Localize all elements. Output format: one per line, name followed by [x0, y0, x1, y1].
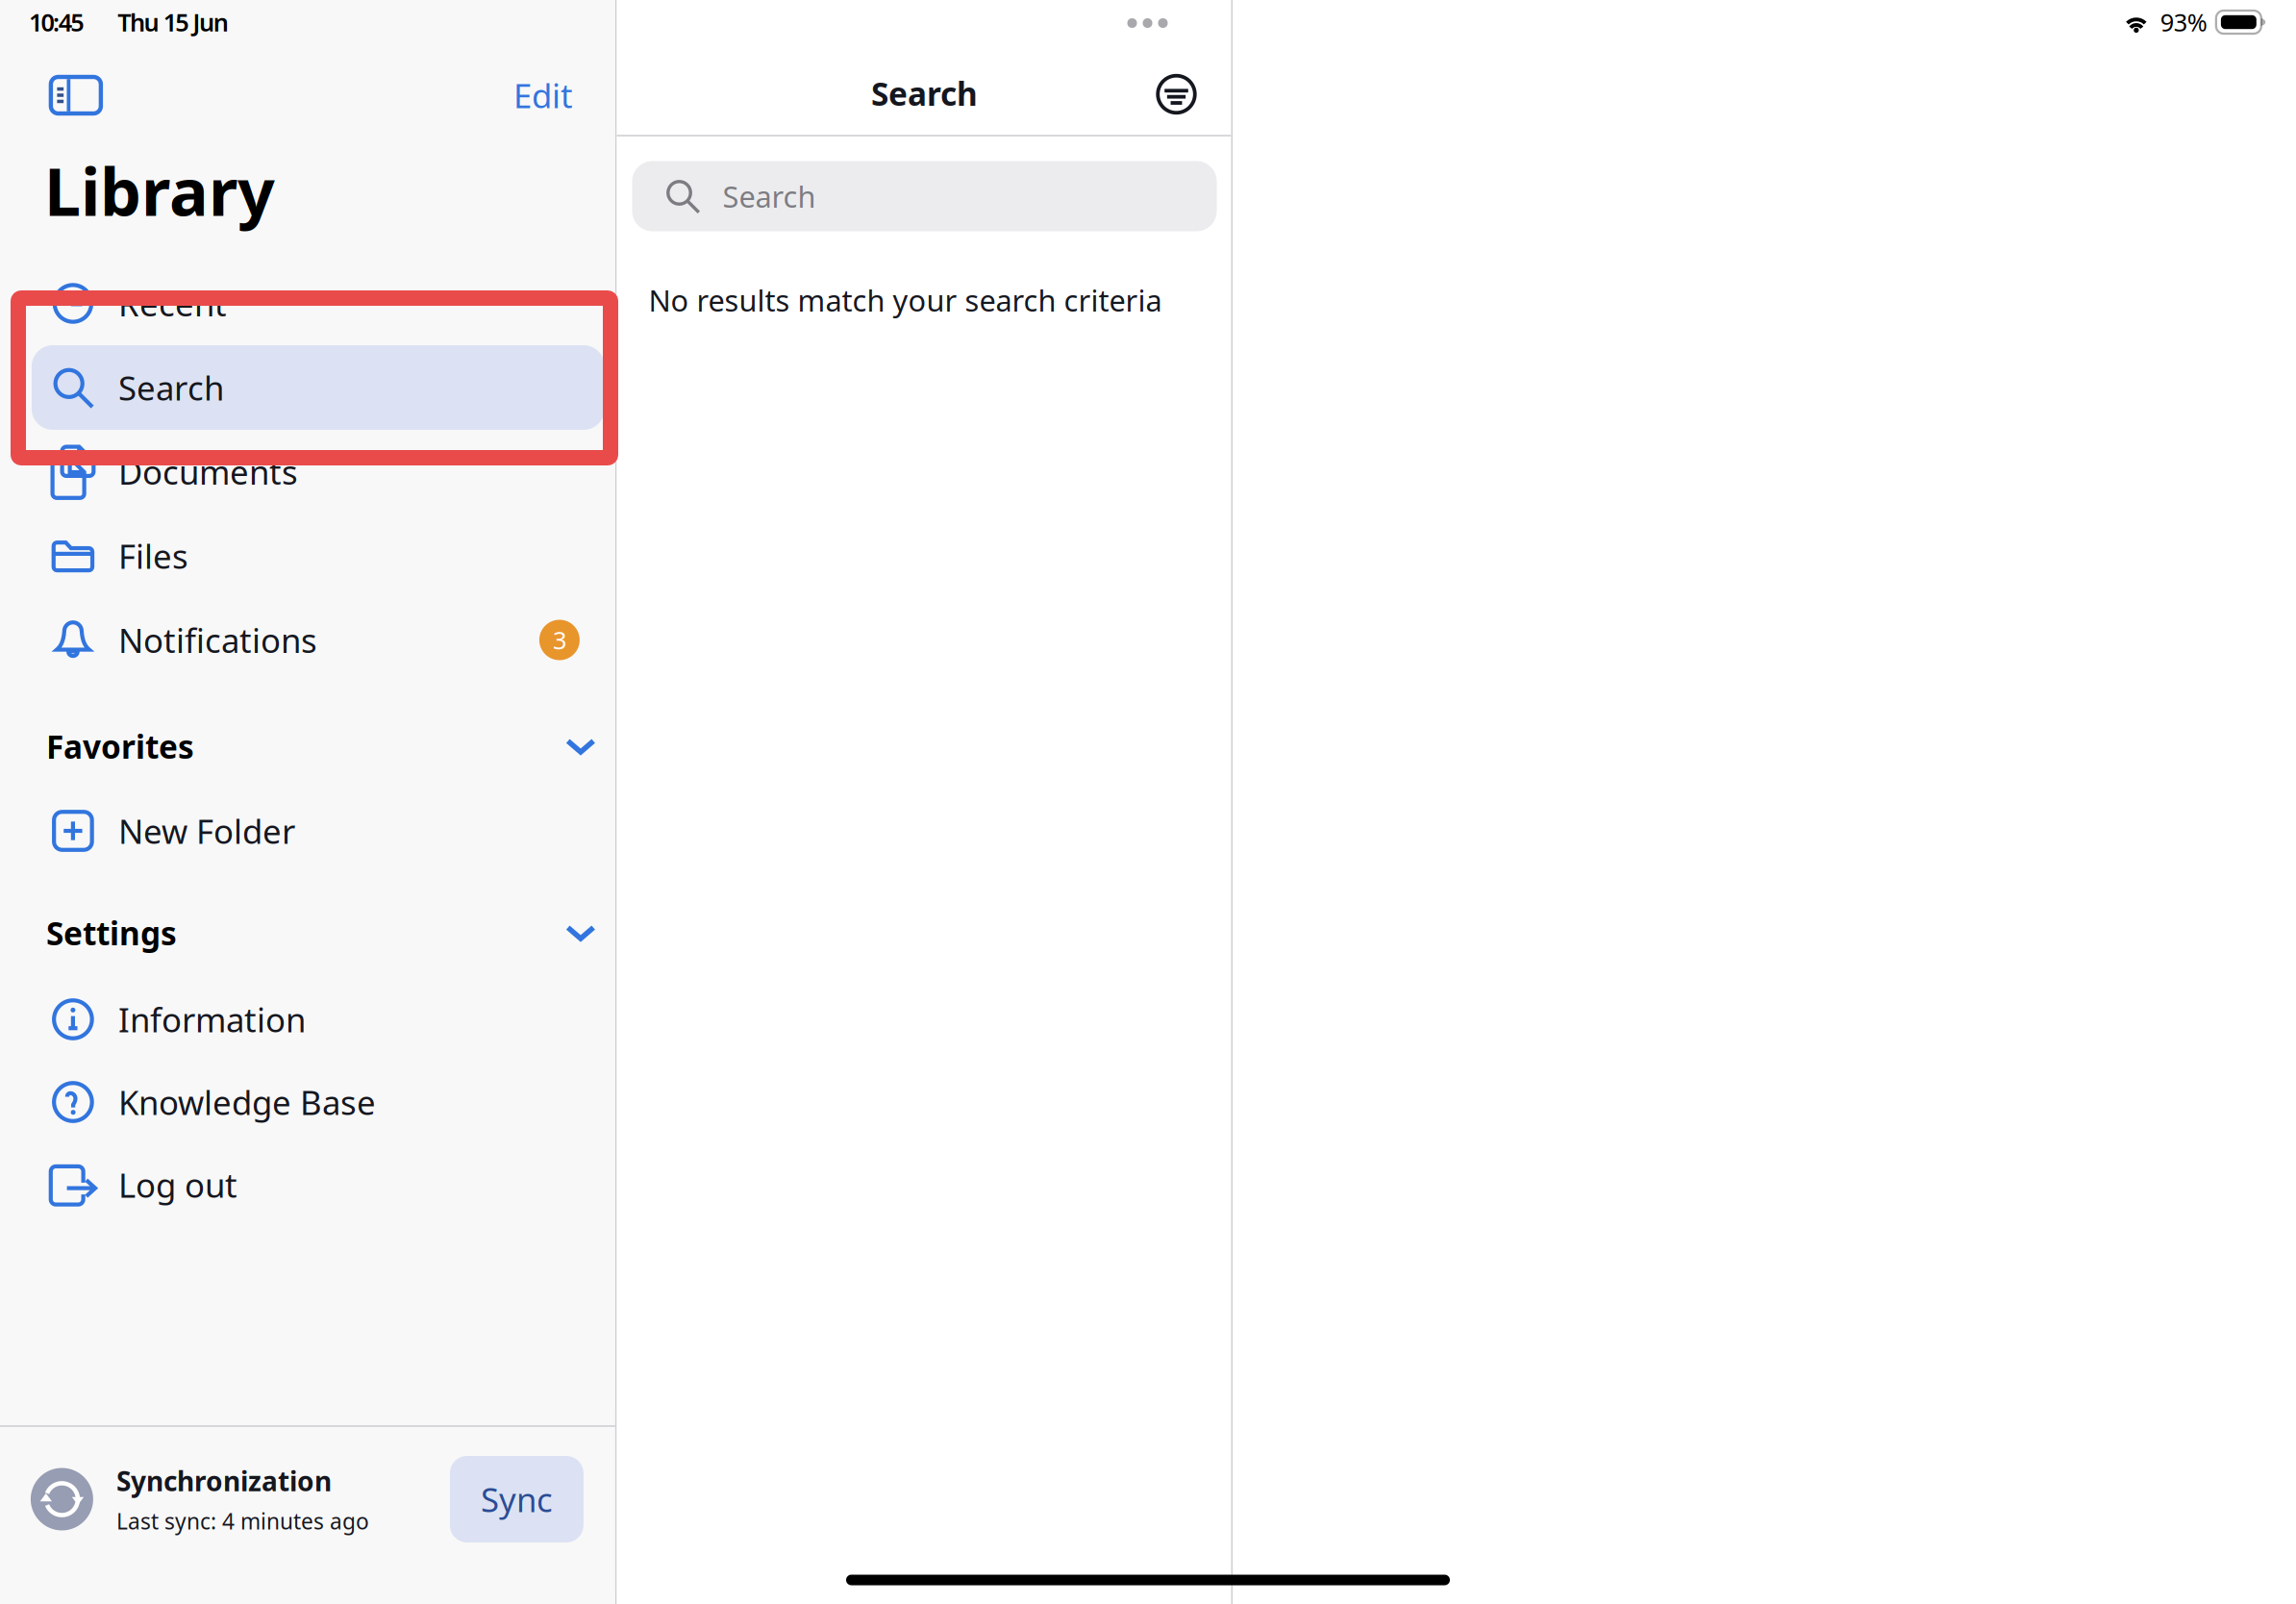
staticText: Search: [723, 177, 816, 216]
button[interactable]: Documents: [32, 429, 605, 514]
button[interactable]: Search: [632, 161, 1217, 231]
button[interactable]: Settings: [0, 903, 615, 963]
staticText: Library: [44, 147, 275, 234]
staticText: Sync: [481, 1477, 553, 1521]
staticText: 3: [553, 624, 566, 656]
button[interactable]: Log out: [32, 1142, 605, 1227]
staticText: Notifications: [118, 618, 317, 662]
button[interactable]: Search: [32, 345, 605, 430]
staticText: Files: [118, 534, 188, 578]
button[interactable]: Synchronization: [0, 1411, 615, 1588]
button[interactable]: Knowledge Base: [32, 1060, 605, 1144]
staticText: 93%: [2160, 6, 2207, 38]
staticText: Search: [118, 365, 224, 410]
button[interactable]: Filter: [1135, 53, 1218, 136]
staticText: Synchronization: [116, 1463, 332, 1499]
staticText: No results match your search criteria: [649, 280, 1162, 320]
staticText: Thu 15 Jun: [118, 6, 229, 38]
staticText: Knowledge Base: [118, 1080, 376, 1124]
button[interactable]: Information: [32, 977, 605, 1062]
staticText: Edit: [513, 73, 573, 117]
button[interactable]: Edit: [485, 56, 601, 135]
staticText: Documents: [118, 450, 298, 494]
staticText: Search: [871, 72, 978, 115]
button[interactable]: Toggle Sidebar: [28, 56, 124, 135]
staticText: Information: [118, 997, 306, 1041]
staticText: Recent: [118, 281, 227, 326]
staticText: Last sync: 4 minutes ago: [116, 1506, 369, 1535]
staticText: Settings: [46, 912, 177, 954]
button[interactable]: Notifications: [32, 598, 605, 682]
button[interactable]: New Folder: [32, 789, 605, 873]
button[interactable]: Recent: [32, 261, 605, 346]
staticText: Favorites: [46, 725, 194, 768]
button[interactable]: Files: [32, 514, 605, 598]
button[interactable]: Favorites: [0, 716, 615, 776]
staticText: 10:45: [29, 6, 84, 38]
staticText: Log out: [118, 1163, 237, 1207]
staticText: New Folder: [118, 809, 295, 853]
